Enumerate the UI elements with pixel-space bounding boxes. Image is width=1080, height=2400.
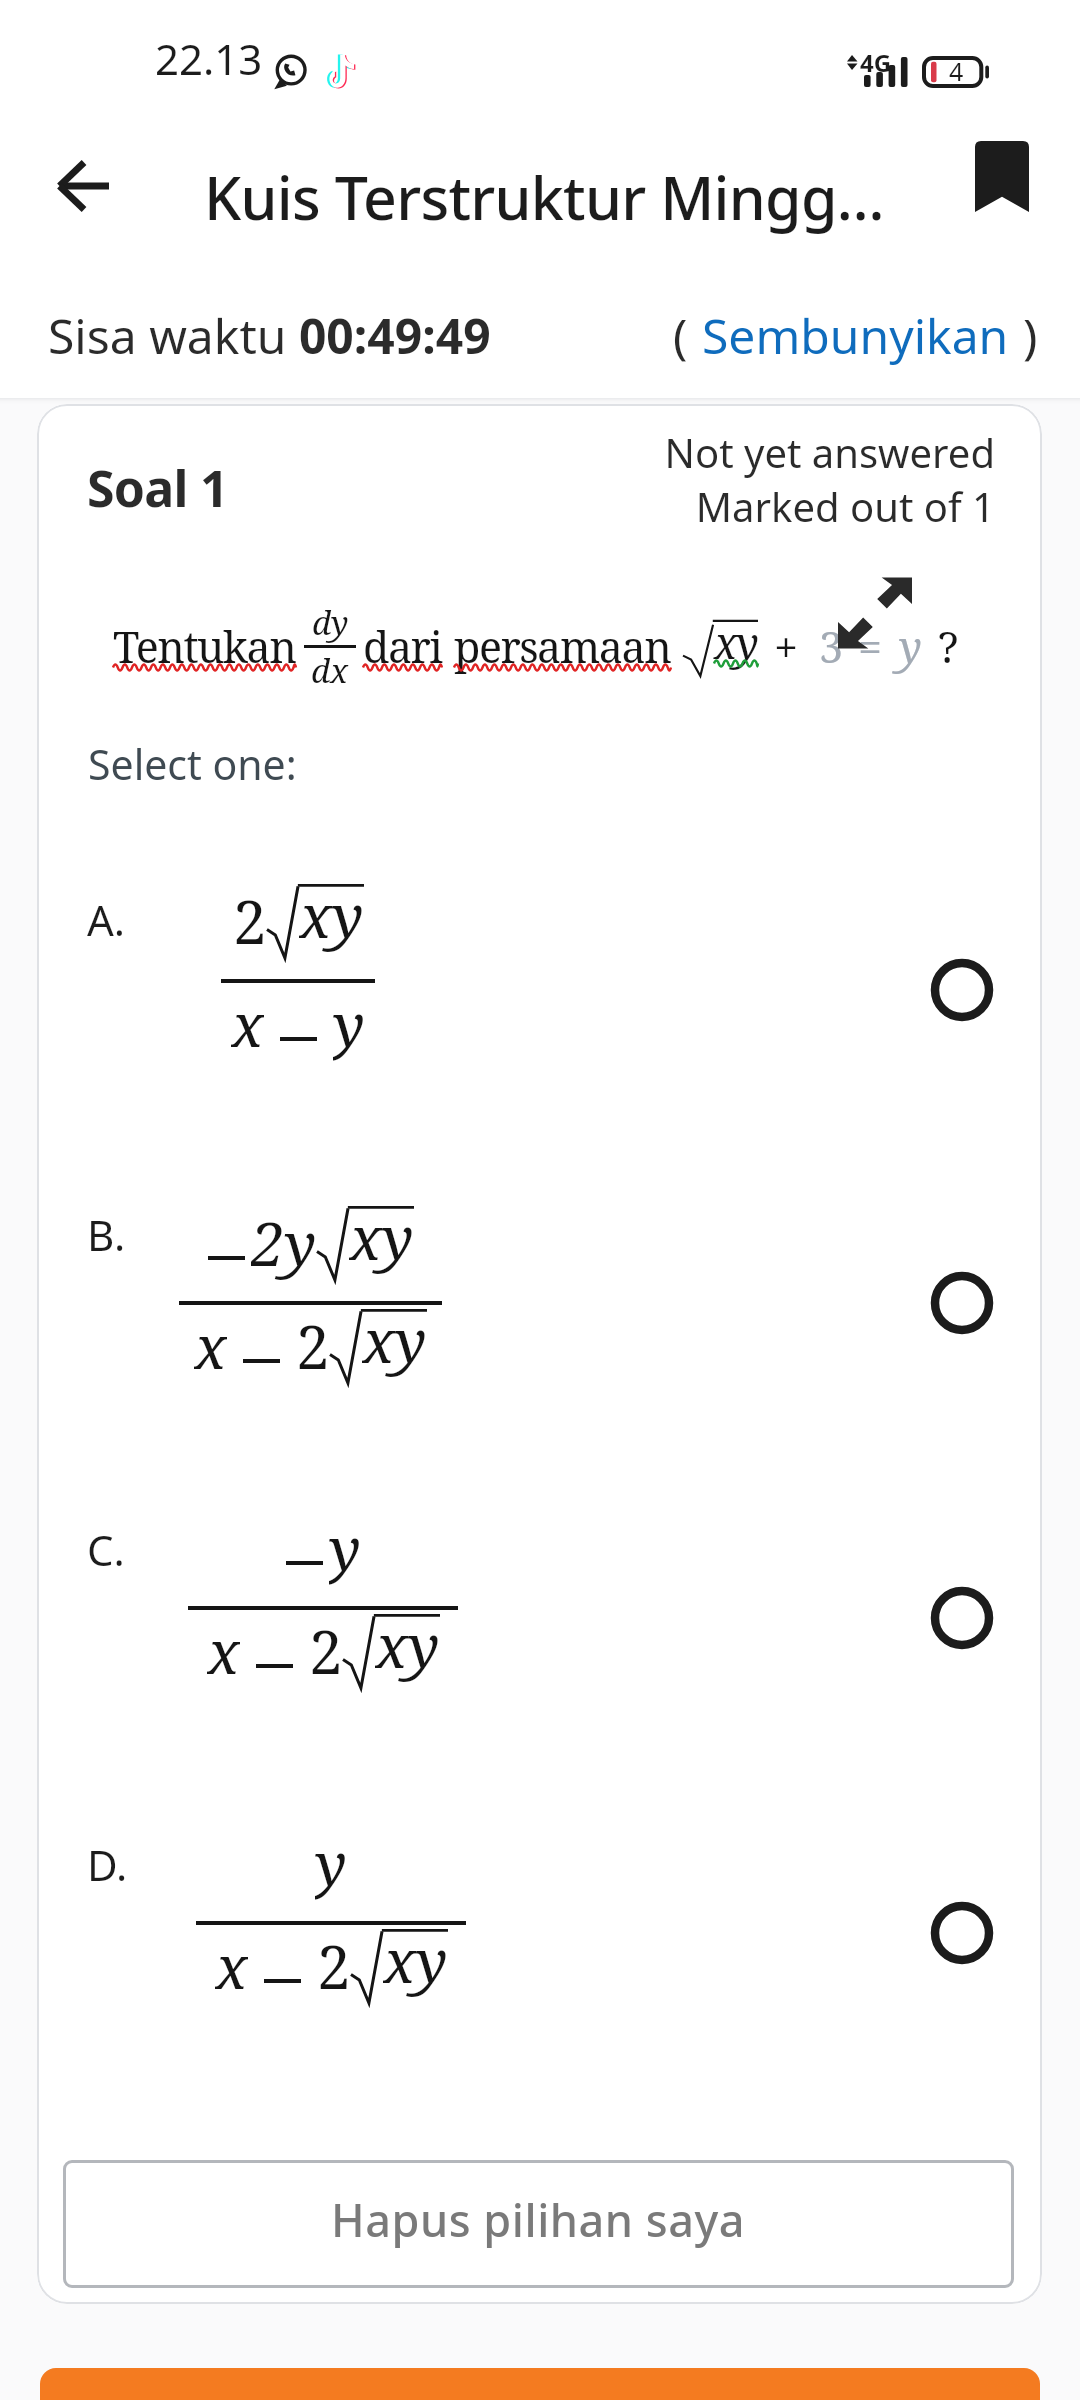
staticText: 2 xyxy=(233,880,267,958)
staticText: Not yet answered xyxy=(664,425,995,479)
staticText: y xyxy=(329,1507,361,1585)
staticText: xy xyxy=(383,1919,448,1997)
staticText: Kuis Terstruktur Mingg… xyxy=(204,157,884,237)
button[interactable]: A. xyxy=(37,877,1042,1177)
staticText: x xyxy=(194,1305,227,1383)
staticText: dy xyxy=(312,600,349,645)
staticText: y xyxy=(315,1822,347,1900)
button[interactable]: D. xyxy=(37,1822,1042,2122)
staticText: + xyxy=(774,617,799,676)
staticText: = xyxy=(858,617,883,676)
staticText: 3 xyxy=(819,617,844,676)
staticText: Tentukan xyxy=(113,617,296,676)
staticText: 22.13 xyxy=(155,30,263,87)
staticText: dari xyxy=(363,617,442,676)
staticText: xy xyxy=(299,874,364,952)
button[interactable]: Sembunyikan xyxy=(702,303,1009,368)
staticText: xy xyxy=(349,1196,414,1274)
staticText: 2 xyxy=(317,1925,351,2003)
staticText: ( xyxy=(673,303,688,368)
staticText: dx xyxy=(311,648,349,693)
staticText: x xyxy=(207,1610,240,1688)
staticText: B. xyxy=(87,1206,126,1263)
staticText: xy xyxy=(362,1299,427,1377)
staticText: Sisa waktu 00:49:49 xyxy=(48,303,491,368)
button[interactable]: Back xyxy=(21,124,145,248)
staticText: 2y xyxy=(251,1202,317,1280)
staticText: C. xyxy=(87,1521,125,1578)
staticText: Hapus pilihan saya xyxy=(331,2189,746,2250)
button[interactable]: C. xyxy=(37,1507,1042,1807)
staticText: x xyxy=(215,1925,248,2003)
staticText: xy xyxy=(375,1604,440,1682)
staticText: y xyxy=(333,983,365,1061)
staticText: Sembunyikan xyxy=(702,303,1009,368)
staticText: 2 xyxy=(296,1305,330,1383)
staticText: Soal 1 xyxy=(87,454,228,522)
staticText: Select one: xyxy=(88,736,297,792)
staticText: Marked out of 1 xyxy=(695,479,995,533)
staticText: y xyxy=(899,617,922,676)
staticText: A. xyxy=(87,891,126,948)
staticText: ? xyxy=(938,617,959,676)
staticText: D. xyxy=(87,1836,128,1893)
button[interactable]: Hapus pilihan saya xyxy=(63,2160,1014,2288)
button[interactable]: Bookmark xyxy=(937,111,1067,241)
button[interactable]: B. xyxy=(37,1192,1042,1492)
button[interactable] xyxy=(40,2368,1040,2400)
staticText: persamaan xyxy=(454,617,671,676)
staticText: ) xyxy=(1023,303,1038,368)
staticText: 4 xyxy=(949,54,964,86)
staticText: 2 xyxy=(309,1610,343,1688)
staticText: xy xyxy=(714,613,758,672)
staticText: 4G xyxy=(860,46,892,79)
staticText: x xyxy=(231,983,264,1061)
